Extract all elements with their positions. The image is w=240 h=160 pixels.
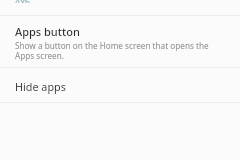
staticText: Apps button <box>15 24 80 39</box>
staticText: 4x6 <box>15 0 31 3</box>
staticText: Apps screen. <box>15 50 64 61</box>
button[interactable]: Apps button <box>0 16 240 67</box>
staticText: Show a button on the Home screen that op… <box>15 40 209 51</box>
staticText: Hide apps <box>15 79 66 94</box>
button[interactable]: 4x6 <box>0 0 240 8</box>
button[interactable]: Hide apps <box>0 68 240 102</box>
